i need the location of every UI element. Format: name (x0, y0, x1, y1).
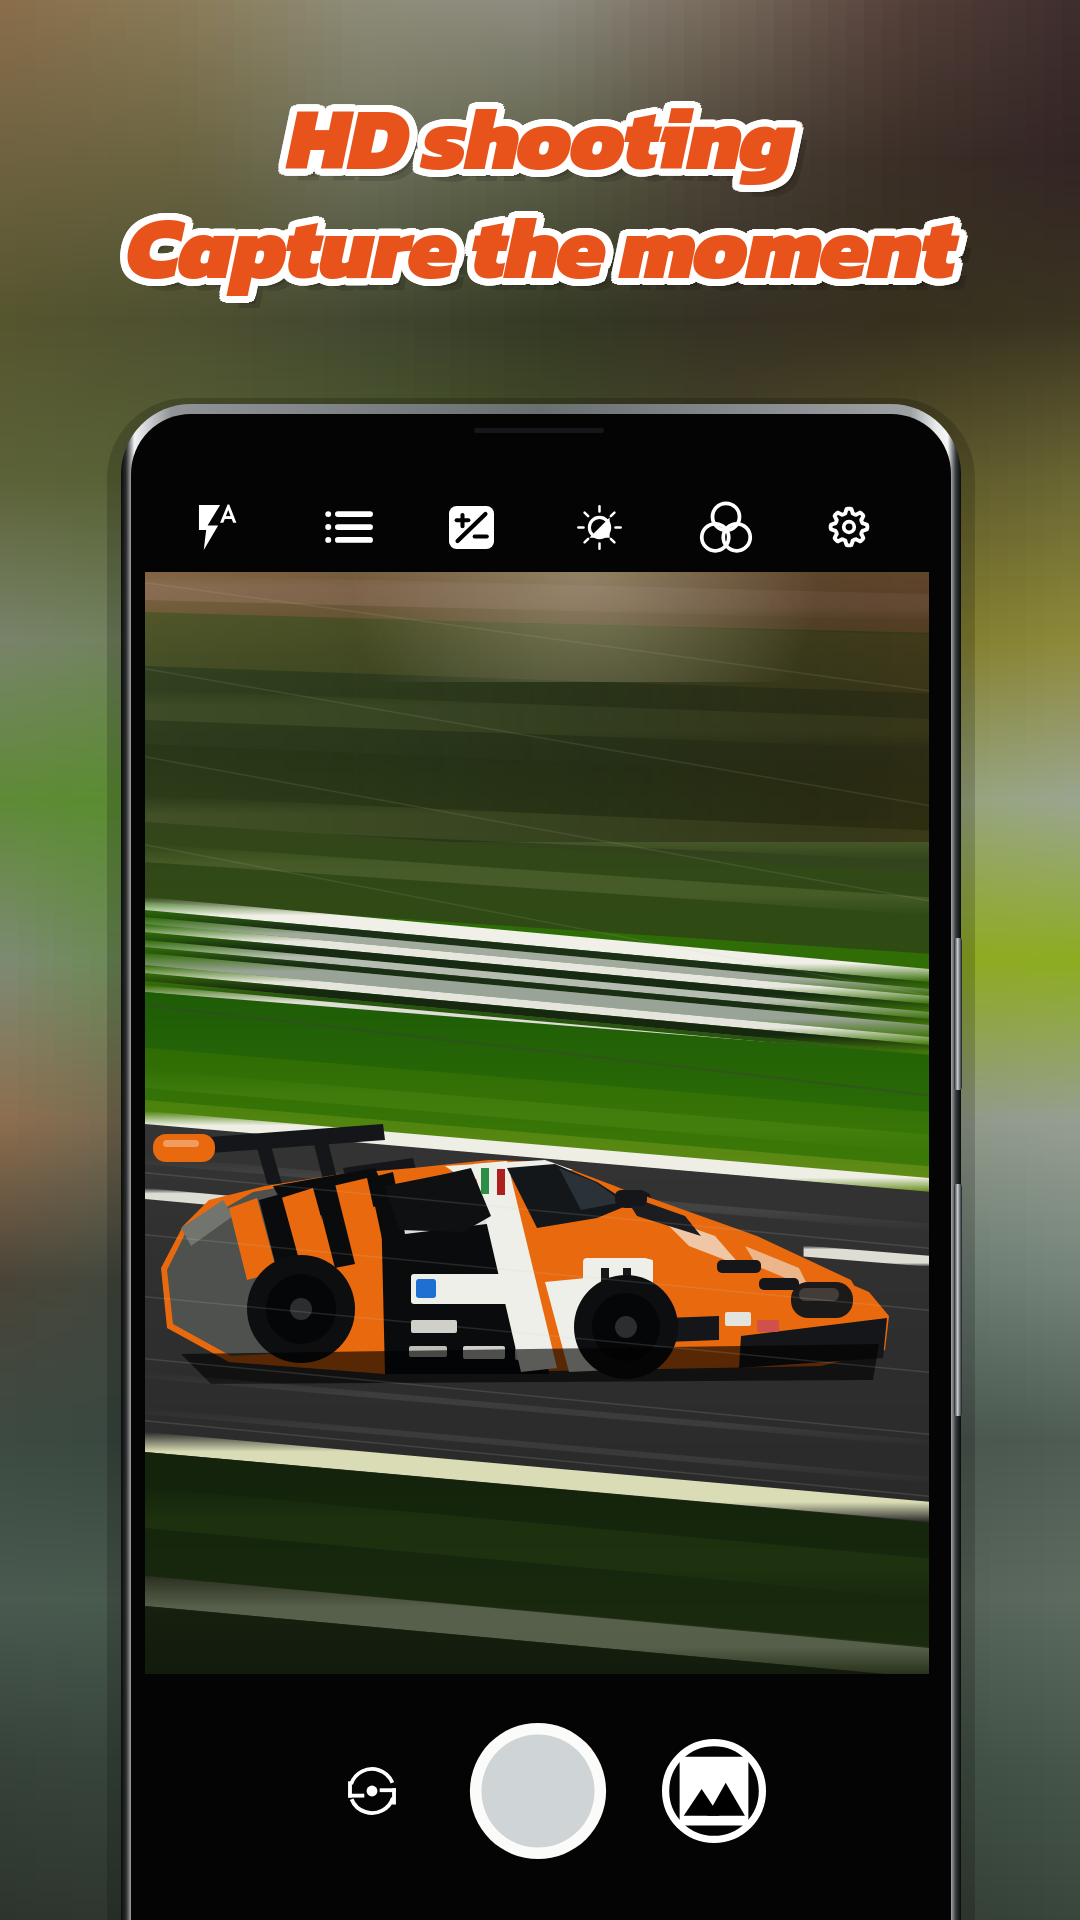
staticText: HD shooting (290, 74, 796, 206)
button[interactable]: Colour filters (686, 487, 766, 567)
staticText: HD shooting (284, 70, 790, 202)
staticText: Capture the moment (130, 175, 959, 307)
button[interactable]: Shooting modes (308, 487, 388, 567)
staticText: Capture the moment (133, 184, 962, 316)
staticText: HD shooting (288, 76, 794, 208)
staticText: Capture the moment (125, 188, 954, 320)
staticText: Capture the moment (119, 184, 948, 316)
staticText: Capture the moment (127, 177, 956, 309)
staticText: Capture the moment (134, 189, 963, 321)
staticText: HD shooting (286, 68, 792, 200)
staticText: HD shooting (281, 77, 787, 209)
staticText: Capture the moment (125, 174, 954, 306)
staticText: HD shooting (295, 80, 801, 212)
staticText: HD shooting (286, 65, 792, 197)
staticText: Capture the moment (123, 183, 952, 315)
staticText: HD shooting (290, 70, 796, 202)
staticText: HD shooting (283, 66, 789, 198)
staticText: Capture the moment (132, 176, 961, 308)
staticText: HD shooting (284, 74, 790, 206)
button[interactable]: Flash auto (182, 487, 262, 567)
staticText: HD shooting (293, 77, 799, 209)
staticText: HD shooting (295, 72, 801, 204)
staticText: Capture the moment (120, 186, 949, 318)
staticText: HD shooting (291, 72, 797, 204)
staticText: Capture the moment (126, 181, 955, 313)
button[interactable]: Brightness (559, 487, 639, 567)
button[interactable]: Gallery (656, 1733, 772, 1849)
staticText: Capture the moment (120, 176, 949, 308)
staticText: Capture the moment (122, 181, 951, 313)
staticText: Capture the moment (129, 183, 958, 315)
staticText: Capture the moment (132, 186, 961, 318)
staticText: HD shooting (286, 79, 792, 211)
staticText: Capture the moment (122, 175, 951, 307)
staticText: HD shooting (283, 72, 789, 204)
staticText: HD shooting (288, 79, 794, 211)
staticText: Capture the moment (123, 179, 952, 311)
staticText: HD shooting (299, 84, 805, 216)
staticText: Capture the moment (133, 178, 962, 310)
staticText: Capture the moment (130, 187, 959, 319)
staticText: HD shooting (280, 72, 786, 204)
staticText: Capture the moment (125, 185, 954, 317)
button[interactable]: Take photo (462, 1715, 614, 1867)
button[interactable]: Exposure compensation (431, 487, 511, 567)
staticText: HD shooting (294, 75, 800, 207)
staticText: Capture the moment (127, 185, 956, 317)
button[interactable]: Switch camera (318, 1737, 426, 1845)
staticText: HD shooting (288, 68, 794, 200)
staticText: HD shooting (291, 78, 797, 210)
staticText: Capture the moment (125, 177, 954, 309)
staticText: Capture the moment (119, 178, 948, 310)
staticText: HD shooting (293, 67, 799, 199)
button[interactable]: Settings (809, 487, 889, 567)
staticText: Capture the moment (127, 174, 956, 306)
staticText: HD shooting (283, 78, 789, 210)
staticText: Capture the moment (122, 187, 951, 319)
staticText: HD shooting (291, 66, 797, 198)
staticText: Capture the moment (127, 188, 956, 320)
staticText: HD shooting (288, 65, 794, 197)
staticText: Capture the moment (138, 193, 967, 325)
staticText: HD shooting (286, 76, 792, 208)
staticText: HD shooting (280, 69, 786, 201)
staticText: HD shooting (287, 72, 793, 204)
staticText: HD shooting (281, 67, 787, 199)
staticText: HD shooting (294, 69, 800, 201)
staticText: HD shooting (291, 76, 797, 208)
staticText: Capture the moment (130, 181, 959, 313)
staticText: Capture the moment (129, 179, 958, 311)
staticText: Capture the moment (130, 185, 959, 317)
staticText: Capture the moment (134, 181, 963, 313)
staticText: HD shooting (280, 75, 786, 207)
staticText: Capture the moment (119, 181, 948, 313)
